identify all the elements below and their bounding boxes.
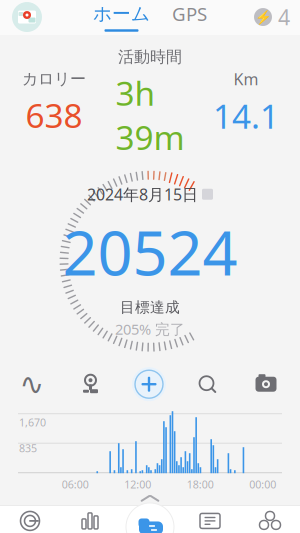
staticText: 12:00 (124, 477, 151, 491)
staticText: 活動時間 (118, 47, 182, 67)
button[interactable]: チャレンジ (240, 507, 300, 533)
button[interactable]: Streak 4 (253, 2, 290, 32)
staticText: 835 (19, 441, 37, 455)
staticText: 638 (25, 93, 82, 137)
button[interactable]: GPS (172, 2, 207, 32)
staticText: Km (233, 68, 258, 90)
button[interactable]: インサイト (60, 507, 120, 533)
button[interactable]: Search (187, 366, 227, 402)
staticText: カロリー (22, 69, 86, 89)
staticText: ホーム (93, 2, 150, 25)
staticText: 4 (278, 3, 290, 31)
button[interactable]: Map profile (10, 0, 44, 34)
staticText: 00:00 (249, 477, 276, 491)
staticText: 06:00 (62, 477, 89, 491)
button[interactable]: コーチ (0, 507, 60, 533)
staticText: 205% 完了 (115, 319, 185, 339)
staticText: GPS (172, 1, 207, 26)
button[interactable]: フィード (180, 507, 240, 533)
button[interactable]: Places (70, 366, 110, 402)
button[interactable]: Add (129, 364, 169, 404)
button[interactable]: Camera (246, 366, 286, 402)
button[interactable]: Routes (12, 366, 52, 402)
staticText: 目標達成 (120, 298, 180, 316)
staticText: 20524 (62, 211, 237, 292)
button[interactable]: Activity (123, 500, 177, 533)
staticText: 3h 39m (115, 71, 184, 159)
staticText: 18:00 (187, 477, 214, 491)
staticText: 2024年8月15日 (87, 184, 198, 205)
staticText: 1,670 (19, 415, 46, 429)
staticText: ∿ (19, 368, 44, 401)
staticText: 14.1 (213, 94, 279, 138)
button[interactable]: ホーム (93, 2, 150, 32)
staticText: ⚡ (254, 9, 271, 25)
